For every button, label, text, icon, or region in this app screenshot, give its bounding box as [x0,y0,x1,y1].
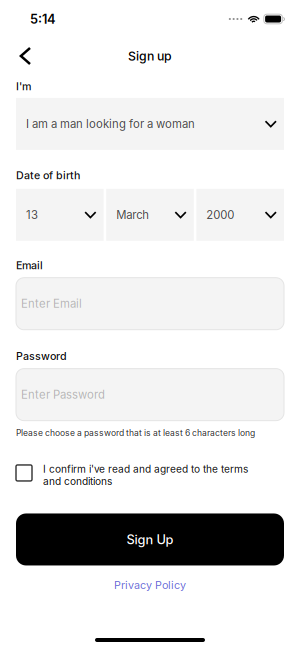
staticText: I confirm i've read and agreed to the te… [43,463,248,487]
button[interactable]: Sign Up [16,513,284,565]
button[interactable]: Privacy Policy [16,573,284,597]
button[interactable]: I confirm i've read and agreed to the te… [16,463,284,487]
staticText: Enter Password [21,388,105,401]
staticText: Sign Up [126,532,173,547]
button[interactable]: Back [0,42,44,70]
staticText: March [116,208,149,222]
button[interactable]: March [106,189,194,241]
staticText: Sign up [128,49,172,63]
staticText: Privacy Policy [114,578,186,592]
staticText: Password [16,350,67,363]
staticText: 13 [26,208,38,222]
staticText: Date of birth [16,169,80,182]
staticText: I am a man looking for a woman [26,117,195,131]
button[interactable]: Enter Password [16,369,284,421]
button[interactable]: 2000 [196,189,284,241]
staticText: I'm [16,80,31,93]
button[interactable]: 13 [16,189,104,241]
staticText: 5:14 [30,11,56,27]
staticText: 2000 [206,208,234,222]
staticText: Please choose a password that is at leas… [16,428,255,438]
button[interactable]: Enter Email [16,278,284,330]
staticText: Enter Email [21,297,82,311]
staticText: Email [16,259,43,272]
button[interactable]: I am a man looking for a woman [16,98,284,150]
